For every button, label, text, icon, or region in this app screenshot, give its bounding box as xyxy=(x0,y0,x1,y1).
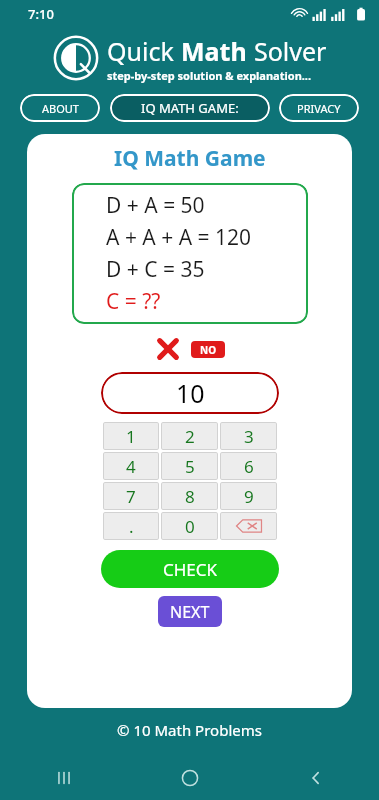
staticText: © 10 Math Problems xyxy=(0,720,379,740)
button[interactable]: 0 xyxy=(161,512,218,540)
button[interactable]: CHECK xyxy=(101,550,279,588)
staticText: 1 xyxy=(126,425,136,448)
staticText: IQ MATH GAME: xyxy=(141,99,239,117)
button[interactable]: 5 xyxy=(161,452,218,480)
staticText: D + C = 35 xyxy=(106,255,205,284)
button[interactable]: 3 xyxy=(220,422,277,450)
staticText: CHECK xyxy=(163,558,218,581)
staticText: 9 xyxy=(244,485,254,508)
staticText: Quick xyxy=(107,34,181,68)
staticText: NEXT xyxy=(170,601,210,623)
staticText: 2 xyxy=(185,425,195,448)
staticText: . xyxy=(129,515,134,538)
button[interactable]: 4 xyxy=(103,452,159,480)
staticText: NO xyxy=(200,343,217,357)
button[interactable]: IQ MATH GAME: xyxy=(110,94,270,122)
staticText: 3 xyxy=(244,425,254,448)
staticText: D + A = 50 xyxy=(106,191,205,220)
staticText: 4 xyxy=(126,455,136,478)
button[interactable]: 9 xyxy=(220,482,277,510)
button[interactable]: . xyxy=(103,512,159,540)
staticText: 10 xyxy=(176,376,205,410)
staticText: step-by-step solution & explanation... xyxy=(107,68,312,83)
staticText: C = ?? xyxy=(106,287,161,316)
staticText: IQ Math Game xyxy=(114,144,266,173)
button[interactable]: 2 xyxy=(161,422,218,450)
staticText: Math xyxy=(181,34,254,68)
button[interactable]: 1 xyxy=(103,422,159,450)
staticText: PRIVACY xyxy=(297,101,341,116)
staticText: 5 xyxy=(185,455,195,478)
staticText: Solver xyxy=(254,34,327,68)
button[interactable]: Back xyxy=(253,756,379,800)
button[interactable]: 8 xyxy=(161,482,218,510)
button[interactable]: 10 xyxy=(101,372,279,414)
button[interactable]: 6 xyxy=(220,452,277,480)
staticText: 7:10 xyxy=(28,5,54,23)
staticText: 8 xyxy=(185,485,195,508)
button[interactable]: PRIVACY xyxy=(279,94,359,122)
staticText: A + A + A = 120 xyxy=(106,223,252,252)
button[interactable]: ABOUT xyxy=(20,94,100,122)
button[interactable]: Home xyxy=(127,756,253,800)
staticText: 7 xyxy=(126,485,136,508)
button[interactable]: Recents xyxy=(0,756,127,800)
button[interactable]: NEXT xyxy=(158,596,222,627)
button[interactable]: 7 xyxy=(103,482,159,510)
staticText: ABOUT xyxy=(42,101,79,116)
button[interactable]: Backspace xyxy=(220,512,277,540)
staticText: 6 xyxy=(244,455,254,478)
staticText: 0 xyxy=(185,515,195,538)
